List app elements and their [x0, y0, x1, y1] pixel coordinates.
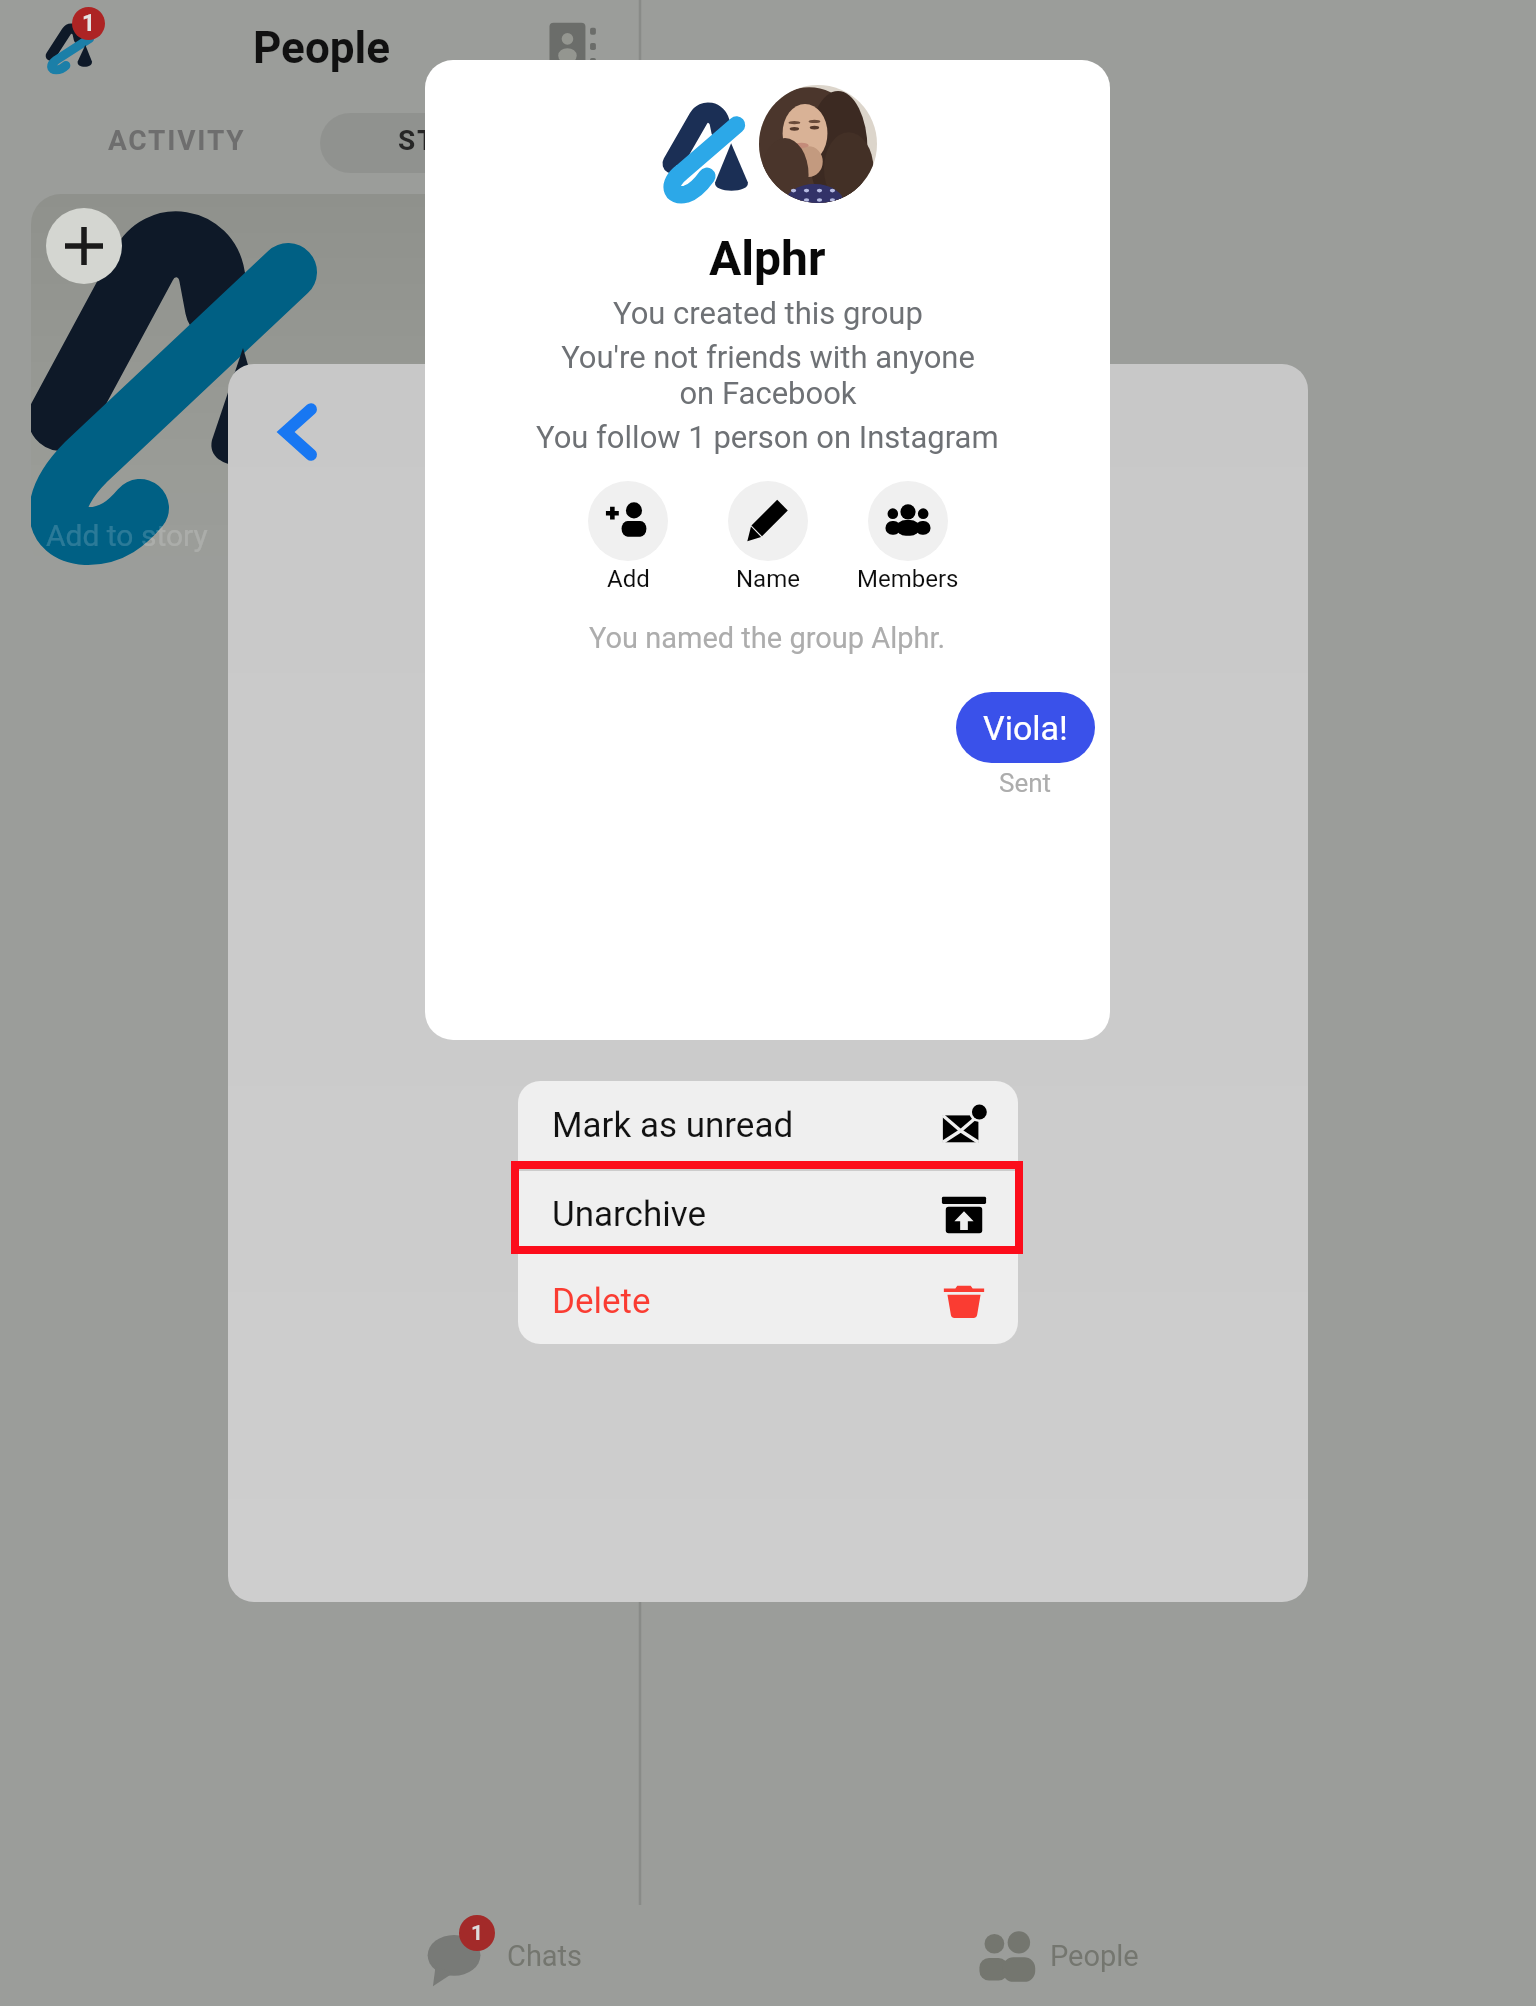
staticText: Sent	[999, 768, 1052, 798]
button[interactable]: ACTIVITY	[104, 118, 250, 163]
staticText: 1	[471, 1921, 484, 1946]
staticText: Mark as unread	[552, 1105, 794, 1146]
button[interactable]	[31, 194, 631, 572]
staticText: ST	[398, 124, 437, 157]
button[interactable]: Back	[252, 386, 344, 478]
staticText: Alphr	[709, 230, 826, 286]
button[interactable]	[320, 113, 650, 173]
staticText: You named the group Alphr.	[589, 621, 946, 655]
staticText: People	[253, 22, 391, 74]
button[interactable]: Mark as unread	[518, 1081, 1018, 1169]
staticText: Delete	[552, 1281, 651, 1322]
button[interactable]: Delete	[518, 1258, 1018, 1344]
button[interactable]: Add	[588, 481, 668, 589]
button[interactable]: Contacts	[546, 18, 604, 76]
staticText: People	[1050, 1939, 1139, 1973]
staticText: You're not friends with anyone on Facebo…	[561, 339, 975, 412]
button[interactable]: 1	[400, 1906, 660, 2006]
staticText: Chats	[507, 1939, 583, 1973]
button[interactable]: Unarchive	[518, 1171, 1018, 1258]
staticText: Members	[857, 565, 959, 593]
button[interactable]: Your profile	[40, 18, 94, 72]
staticText: ACTIVITY	[108, 124, 246, 157]
staticText: You follow 1 person on Instagram	[536, 419, 999, 455]
button[interactable]: Members	[868, 481, 948, 589]
staticText: Add	[607, 565, 650, 593]
staticText: Viola!	[983, 708, 1068, 748]
staticText: Add to story	[46, 518, 208, 553]
staticText: Name	[736, 565, 800, 593]
staticText: You created this group	[613, 295, 923, 331]
button[interactable]: Name	[728, 481, 808, 589]
staticText: 1	[82, 10, 96, 37]
staticText: Unarchive	[552, 1194, 706, 1235]
button[interactable]: People	[950, 1906, 1210, 2006]
button[interactable]: Add to story	[46, 208, 122, 284]
button[interactable]: Viola!	[956, 692, 1095, 763]
